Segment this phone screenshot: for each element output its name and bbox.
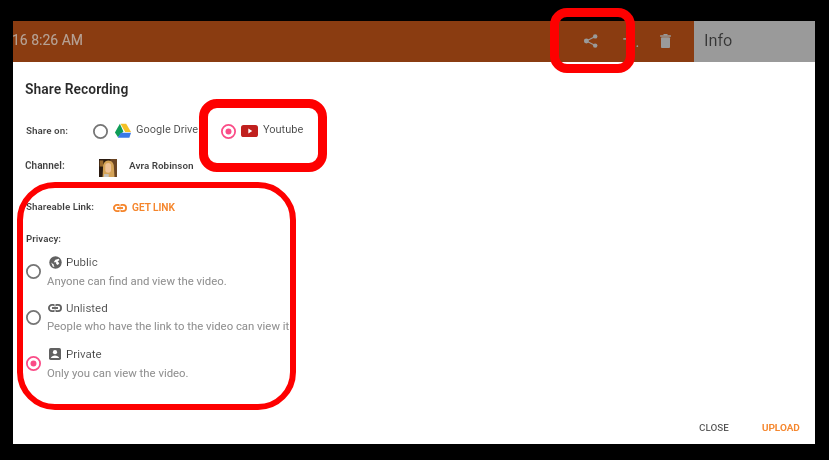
button[interactable]: [92, 117, 199, 145]
staticText: Avra Robinson: [129, 160, 194, 172]
staticText: UPLOAD: [762, 422, 800, 434]
staticText: Privacy:: [26, 233, 62, 244]
staticText: Public: [66, 255, 98, 268]
staticText: Private: [66, 347, 102, 360]
staticText: People who have the link to the video ca…: [47, 319, 293, 332]
button[interactable]: [694, 21, 815, 62]
staticText: Info: [704, 31, 733, 50]
staticText: Unlisted: [66, 301, 108, 314]
button[interactable]: [23, 254, 285, 291]
button[interactable]: GET LINK: [110, 200, 175, 216]
button[interactable]: CLOSE: [688, 415, 740, 440]
staticText: Shareable Link:: [26, 201, 95, 212]
button[interactable]: Delete: [645, 21, 685, 61]
staticText: Youtube: [263, 123, 304, 136]
button[interactable]: [220, 117, 306, 145]
staticText: GET LINK: [132, 202, 175, 214]
button[interactable]: Trim: [608, 21, 648, 61]
staticText: Google Drive: [136, 123, 199, 136]
staticText: Channel:: [25, 160, 65, 172]
staticText: 16 8:26 AM: [12, 32, 84, 48]
staticText: Only you can view the video.: [47, 366, 189, 379]
staticText: Share on:: [26, 125, 68, 137]
staticText: Anyone can find and view the video.: [47, 274, 227, 287]
button[interactable]: [23, 347, 285, 384]
staticText: CLOSE: [699, 422, 729, 434]
button[interactable]: [23, 301, 285, 338]
button[interactable]: Share: [571, 21, 611, 61]
button[interactable]: UPLOAD: [755, 415, 807, 440]
staticText: Share Recording: [25, 81, 129, 97]
